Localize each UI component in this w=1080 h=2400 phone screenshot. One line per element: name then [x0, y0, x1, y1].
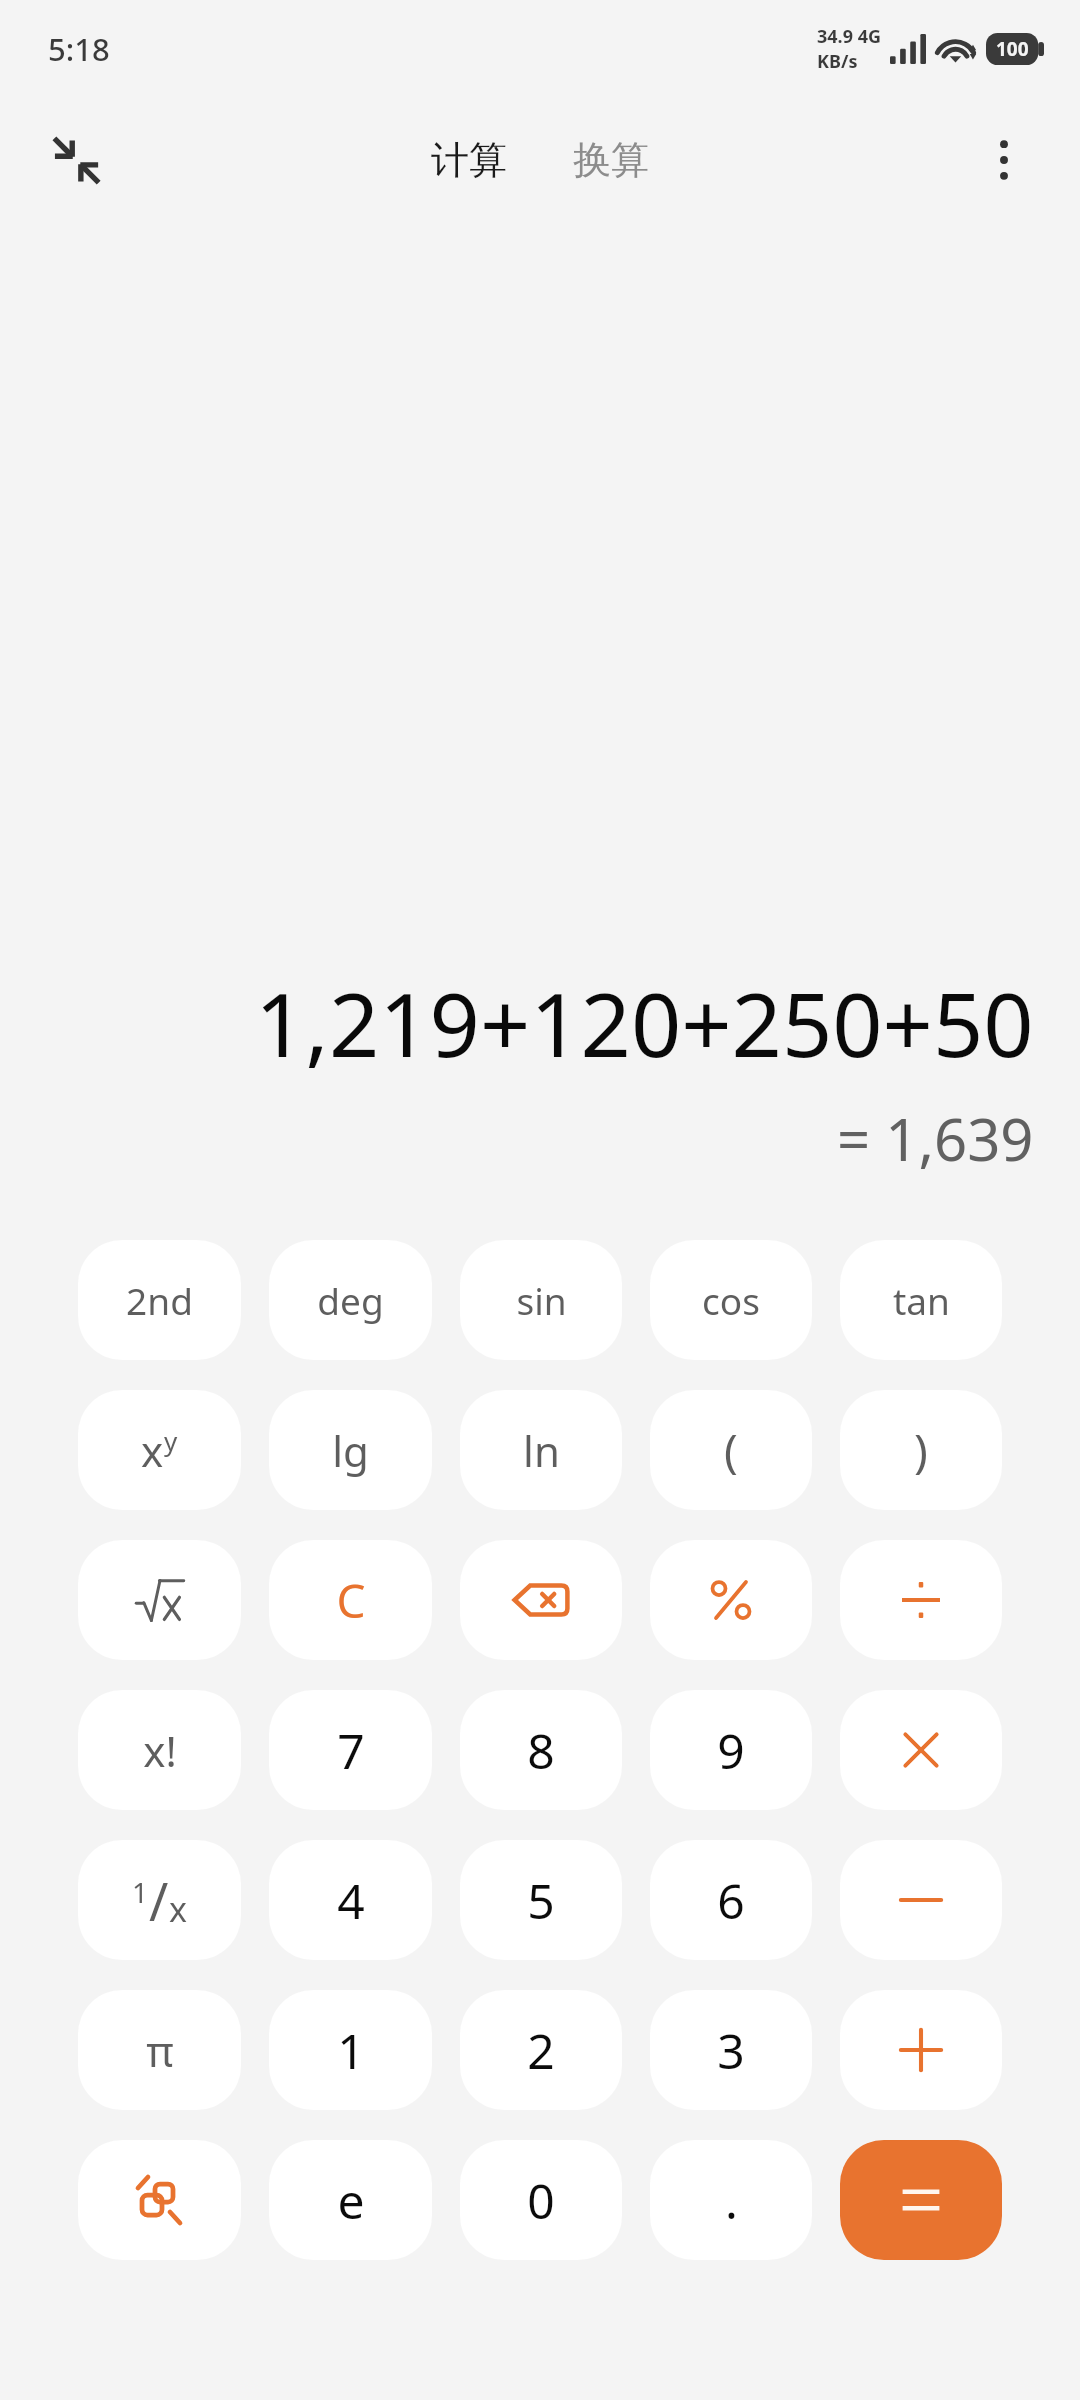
button[interactable]: 7: [269, 1690, 432, 1810]
staticText: 计算: [431, 136, 507, 184]
staticText: 1: [132, 1873, 149, 1911]
button[interactable]: (: [650, 1390, 812, 1510]
staticText: 5: [527, 1868, 555, 1933]
button[interactable]: Multiply: [840, 1690, 1002, 1810]
button[interactable]: Divide: [840, 1540, 1002, 1660]
staticText: (: [724, 1419, 738, 1482]
button[interactable]: 6: [650, 1840, 812, 1960]
button[interactable]: ): [840, 1390, 1002, 1510]
button[interactable]: lg: [269, 1390, 432, 1510]
button[interactable]: 2nd: [78, 1240, 241, 1360]
staticText: tan: [893, 1275, 950, 1325]
staticText: 9: [717, 1718, 745, 1783]
staticText: 换算: [573, 136, 649, 184]
staticText: 6: [717, 1868, 745, 1933]
button[interactable]: 1: [269, 1990, 432, 2110]
button[interactable]: 2: [460, 1990, 622, 2110]
staticText: 8: [527, 1718, 555, 1783]
staticText: 1,219+120+250+50: [255, 963, 1034, 1083]
button[interactable]: cos: [650, 1240, 812, 1360]
button[interactable]: Percent: [650, 1540, 812, 1660]
button[interactable]: x!: [78, 1690, 241, 1810]
button[interactable]: C: [269, 1540, 432, 1660]
button[interactable]: 1: [78, 1840, 241, 1960]
button[interactable]: Square root: [78, 1540, 241, 1660]
button[interactable]: Minus: [840, 1840, 1002, 1960]
staticText: 3: [717, 2018, 745, 2083]
staticText: π: [146, 2022, 174, 2079]
staticText: C: [336, 1569, 366, 1632]
staticText: x: [169, 1886, 187, 1932]
staticText: sin: [516, 1275, 567, 1325]
staticText: ln: [523, 1422, 560, 1479]
staticText: 100: [996, 36, 1029, 62]
button[interactable]: Unit conversion: [78, 2140, 241, 2260]
staticText: .: [725, 2168, 738, 2233]
staticText: 5:18: [48, 28, 110, 70]
button[interactable]: 计算: [419, 128, 519, 192]
staticText: /: [149, 1865, 169, 1936]
button[interactable]: Collapse: [30, 114, 122, 206]
staticText: deg: [317, 1275, 384, 1325]
staticText: 7: [337, 1718, 365, 1783]
staticText: 2: [527, 2018, 555, 2083]
button[interactable]: π: [78, 1990, 241, 2110]
button[interactable]: 9: [650, 1690, 812, 1810]
button[interactable]: 换算: [561, 128, 661, 192]
button[interactable]: ln: [460, 1390, 622, 1510]
button[interactable]: 3: [650, 1990, 812, 2110]
button[interactable]: 8: [460, 1690, 622, 1810]
button[interactable]: Plus: [840, 1990, 1002, 2110]
staticText: 4: [337, 1868, 365, 1933]
staticText: y: [164, 1423, 178, 1458]
staticText: lg: [332, 1422, 369, 1479]
staticText: = 1,639: [837, 1099, 1034, 1178]
button[interactable]: 4: [269, 1840, 432, 1960]
button[interactable]: Backspace: [460, 1540, 622, 1660]
button[interactable]: deg: [269, 1240, 432, 1360]
button[interactable]: x: [78, 1390, 241, 1510]
button[interactable]: sin: [460, 1240, 622, 1360]
staticText: x!: [143, 1722, 177, 1779]
staticText: KB/s: [817, 49, 858, 74]
button[interactable]: tan: [840, 1240, 1002, 1360]
staticText: 34.9 4G: [817, 24, 881, 49]
staticText: 2nd: [126, 1275, 193, 1325]
button[interactable]: 0: [460, 2140, 622, 2260]
button[interactable]: 5: [460, 1840, 622, 1960]
button[interactable]: More options: [958, 114, 1050, 206]
staticText: e: [337, 2168, 365, 2233]
button[interactable]: .: [650, 2140, 812, 2260]
button[interactable]: e: [269, 2140, 432, 2260]
button[interactable]: Equals: [840, 2140, 1002, 2260]
staticText: x: [141, 1422, 164, 1479]
staticText: 0: [527, 2168, 555, 2233]
staticText: ): [914, 1419, 928, 1482]
staticText: 1: [337, 2018, 365, 2083]
staticText: cos: [702, 1275, 760, 1325]
